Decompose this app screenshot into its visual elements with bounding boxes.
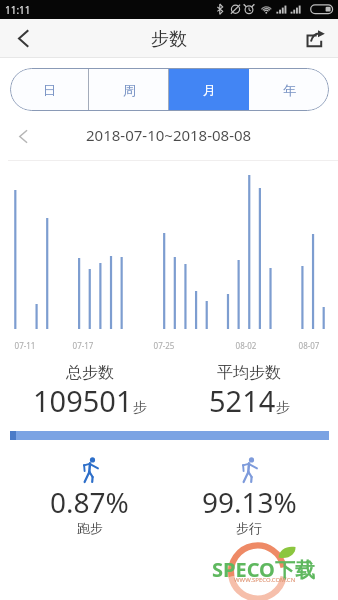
- staticText: 07-25: [144, 340, 184, 351]
- staticText: SPECO下载: [212, 556, 315, 583]
- staticText: 平均步数: [217, 363, 281, 383]
- staticText: WWW.SPECO.COM.CN: [234, 576, 296, 584]
- staticText: 日: [43, 82, 56, 98]
- button[interactable]: 日: [10, 68, 89, 111]
- staticText: 07-11: [5, 340, 45, 351]
- staticText: 跑步: [77, 520, 103, 536]
- staticText: 步: [133, 399, 147, 417]
- staticText: 99.13%: [202, 483, 297, 521]
- staticText: 08-02: [226, 340, 266, 351]
- staticText: 5214: [209, 381, 276, 420]
- button[interactable]: Previous period: [0, 112, 46, 161]
- button[interactable]: Share: [293, 19, 338, 58]
- staticText: 总步数: [66, 363, 114, 383]
- staticText: 步行: [236, 520, 262, 536]
- button[interactable]: Back: [0, 19, 45, 58]
- staticText: 109501: [33, 381, 133, 420]
- staticText: 年: [283, 82, 296, 98]
- button[interactable]: 年: [249, 68, 329, 111]
- staticText: 月: [203, 82, 216, 98]
- staticText: 2018-07-10~2018-08-08: [86, 125, 252, 145]
- staticText: 周: [123, 82, 136, 98]
- staticText: 步数: [151, 28, 187, 51]
- button[interactable]: 月: [169, 68, 249, 111]
- staticText: 0.87%: [50, 483, 129, 521]
- staticText: 步: [276, 399, 290, 417]
- button[interactable]: 周: [89, 68, 169, 111]
- staticText: 07-17: [63, 340, 103, 351]
- staticText: 11:11: [5, 3, 31, 17]
- staticText: 08-07: [289, 340, 329, 351]
